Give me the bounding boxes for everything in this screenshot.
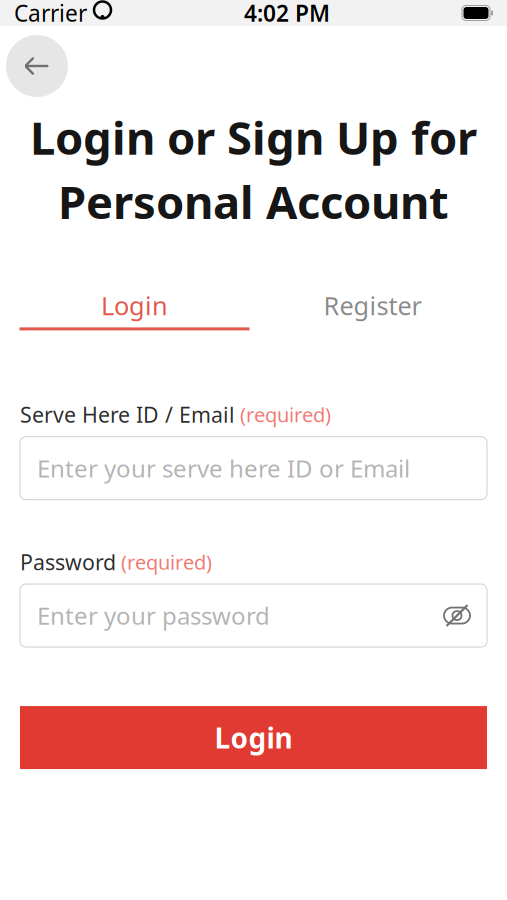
staticText: Login — [101, 289, 168, 322]
button[interactable]: Login — [19, 283, 249, 330]
button[interactable]: Register — [257, 283, 487, 330]
button[interactable]: Login — [20, 706, 487, 769]
staticText: (required) — [240, 401, 331, 428]
staticText: Personal Account — [58, 171, 449, 231]
button[interactable]: Show password — [437, 596, 477, 636]
staticText: Enter your serve here ID or Email — [37, 452, 410, 484]
staticText: Serve Here ID / Email — [20, 400, 235, 429]
staticText: Login — [214, 719, 292, 756]
staticText: Password — [20, 548, 116, 576]
button[interactable]: Back — [6, 35, 68, 97]
staticText: 4:02 PM — [244, 0, 330, 28]
staticText: Carrier — [14, 0, 87, 28]
staticText: Login or Sign Up for — [30, 107, 477, 167]
staticText: Register — [323, 289, 421, 322]
staticText: Enter your password — [37, 600, 270, 631]
staticText: (required) — [121, 549, 212, 575]
